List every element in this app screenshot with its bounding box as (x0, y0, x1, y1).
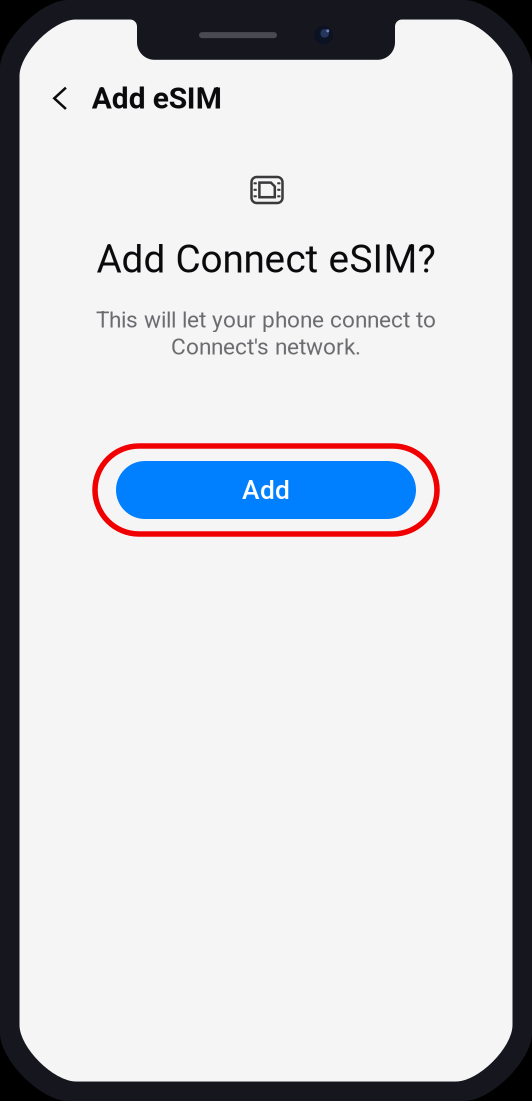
button[interactable]: Add eSIM (19, 71, 512, 125)
staticText: Add (242, 474, 290, 505)
button[interactable]: Add (116, 461, 416, 519)
staticText: Add Connect eSIM? (96, 237, 435, 282)
staticText: This will let your phone connect to (96, 306, 436, 333)
staticText: Connect's network. (171, 334, 361, 360)
staticText: Add eSIM (92, 81, 222, 116)
